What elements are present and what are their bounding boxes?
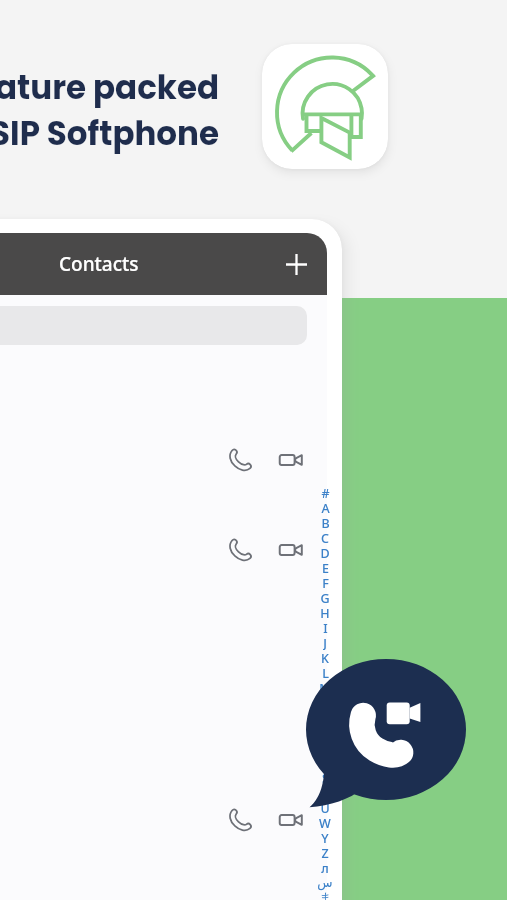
- staticText: U: [320, 800, 330, 815]
- staticText: س: [317, 875, 333, 890]
- staticText: E: [322, 560, 329, 575]
- staticText: G: [320, 590, 330, 605]
- staticText: F: [322, 575, 329, 590]
- staticText: C: [321, 530, 329, 545]
- button[interactable]: Call contact: [219, 438, 263, 482]
- staticText: K: [321, 650, 329, 665]
- staticText: Y: [321, 830, 329, 845]
- button[interactable]: Add contact: [272, 240, 320, 288]
- button[interactable]: Video call contact: [269, 798, 313, 842]
- staticText: I: [323, 620, 328, 635]
- button[interactable]: Video call contact: [269, 438, 313, 482]
- staticText: S: [322, 770, 329, 785]
- staticText: Contacts: [59, 251, 139, 277]
- button[interactable]: Video call contact: [269, 528, 313, 572]
- staticText: Z: [321, 845, 329, 860]
- staticText: #: [321, 485, 330, 500]
- staticText: T: [321, 785, 329, 800]
- staticText: B: [321, 515, 330, 530]
- staticText: L: [322, 665, 329, 680]
- staticText: Feature packed: [0, 65, 219, 111]
- staticText: D: [320, 545, 330, 560]
- staticText: W: [319, 815, 331, 830]
- staticText: H: [320, 605, 330, 620]
- staticText: M: [319, 680, 331, 695]
- staticText: A: [321, 500, 330, 515]
- staticText: л: [321, 860, 329, 875]
- staticText: ま: [319, 890, 332, 900]
- button[interactable]: Start a new call: [300, 653, 472, 815]
- staticText: J: [323, 635, 327, 650]
- staticText: SIP Softphone: [0, 111, 219, 157]
- button[interactable]: Call contact: [219, 528, 263, 572]
- button[interactable]: Call contact: [219, 798, 263, 842]
- button[interactable]: Alphabet index: [315, 485, 335, 900]
- button[interactable]: App icon: [262, 44, 388, 169]
